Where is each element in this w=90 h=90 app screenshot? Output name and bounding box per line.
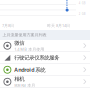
staticText: 1.4 MB 本月使用 <box>14 46 44 52</box>
button[interactable]: 相机 <box>0 76 90 88</box>
staticText: 昨天 8月14日 <box>47 23 70 28</box>
staticText: Android 系统 <box>14 66 45 73</box>
button[interactable]: 微信 <box>0 40 90 52</box>
staticText: 4 GB <box>79 1 86 5</box>
staticText: 行驶记录仪系统服务 <box>14 54 59 61</box>
button[interactable]: 行驶记录仪系统服务 <box>0 52 90 64</box>
staticText: 上月流量使用方案月列表 <box>2 32 46 37</box>
staticText: 2 GB <box>79 12 86 16</box>
button[interactable]: Android 系统 <box>0 64 90 76</box>
staticText: 相机 <box>14 76 24 82</box>
staticText: 808 KB 本月 <box>14 82 35 88</box>
staticText: 7月8日 <box>2 23 14 28</box>
staticText: 微信 <box>14 40 24 46</box>
